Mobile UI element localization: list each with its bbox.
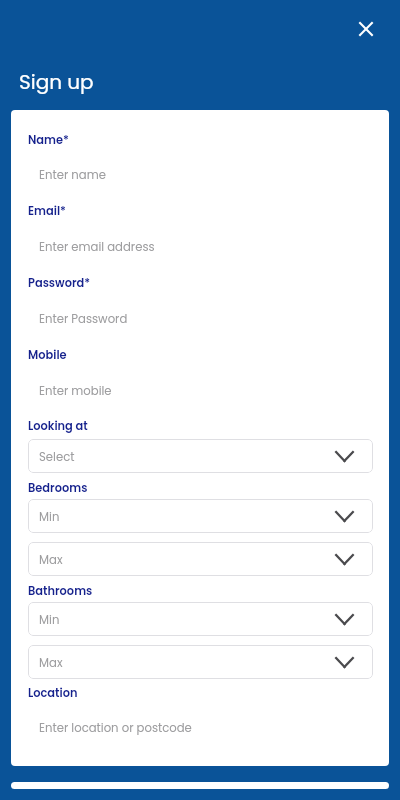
staticText: Min <box>39 612 60 628</box>
staticText: Enter Password <box>39 311 128 327</box>
staticText: Mobile <box>28 347 67 363</box>
staticText: Looking at <box>28 418 88 434</box>
button[interactable]: Max <box>28 542 373 576</box>
staticText: Select <box>39 449 75 465</box>
staticText: Bedrooms <box>28 480 88 496</box>
staticText: Bathrooms <box>28 583 93 599</box>
button[interactable]: Min <box>28 499 373 533</box>
button[interactable]: Select <box>28 439 373 473</box>
staticText: Name* <box>28 132 69 148</box>
staticText: Max <box>39 655 63 671</box>
button[interactable]: Min <box>28 602 373 636</box>
staticText: Password* <box>28 275 91 291</box>
button[interactable]: Continue <box>11 782 389 789</box>
staticText: Sign up <box>19 68 94 96</box>
staticText: Enter mobile <box>39 383 112 399</box>
staticText: Max <box>39 552 63 568</box>
staticText: Enter email address <box>39 239 155 255</box>
staticText: Enter name <box>39 167 106 183</box>
button[interactable]: Close <box>348 11 384 47</box>
button[interactable]: Max <box>28 645 373 679</box>
button[interactable]: Enter name <box>28 163 372 187</box>
button[interactable]: Enter email address <box>28 235 372 259</box>
button[interactable]: Enter Password <box>28 307 372 331</box>
staticText: Enter location or postcode <box>39 720 192 736</box>
staticText: Min <box>39 509 60 525</box>
button[interactable]: Enter mobile <box>28 379 372 403</box>
staticText: Location <box>28 685 78 701</box>
staticText: Email* <box>28 203 66 219</box>
button[interactable]: Enter location or postcode <box>28 716 372 740</box>
